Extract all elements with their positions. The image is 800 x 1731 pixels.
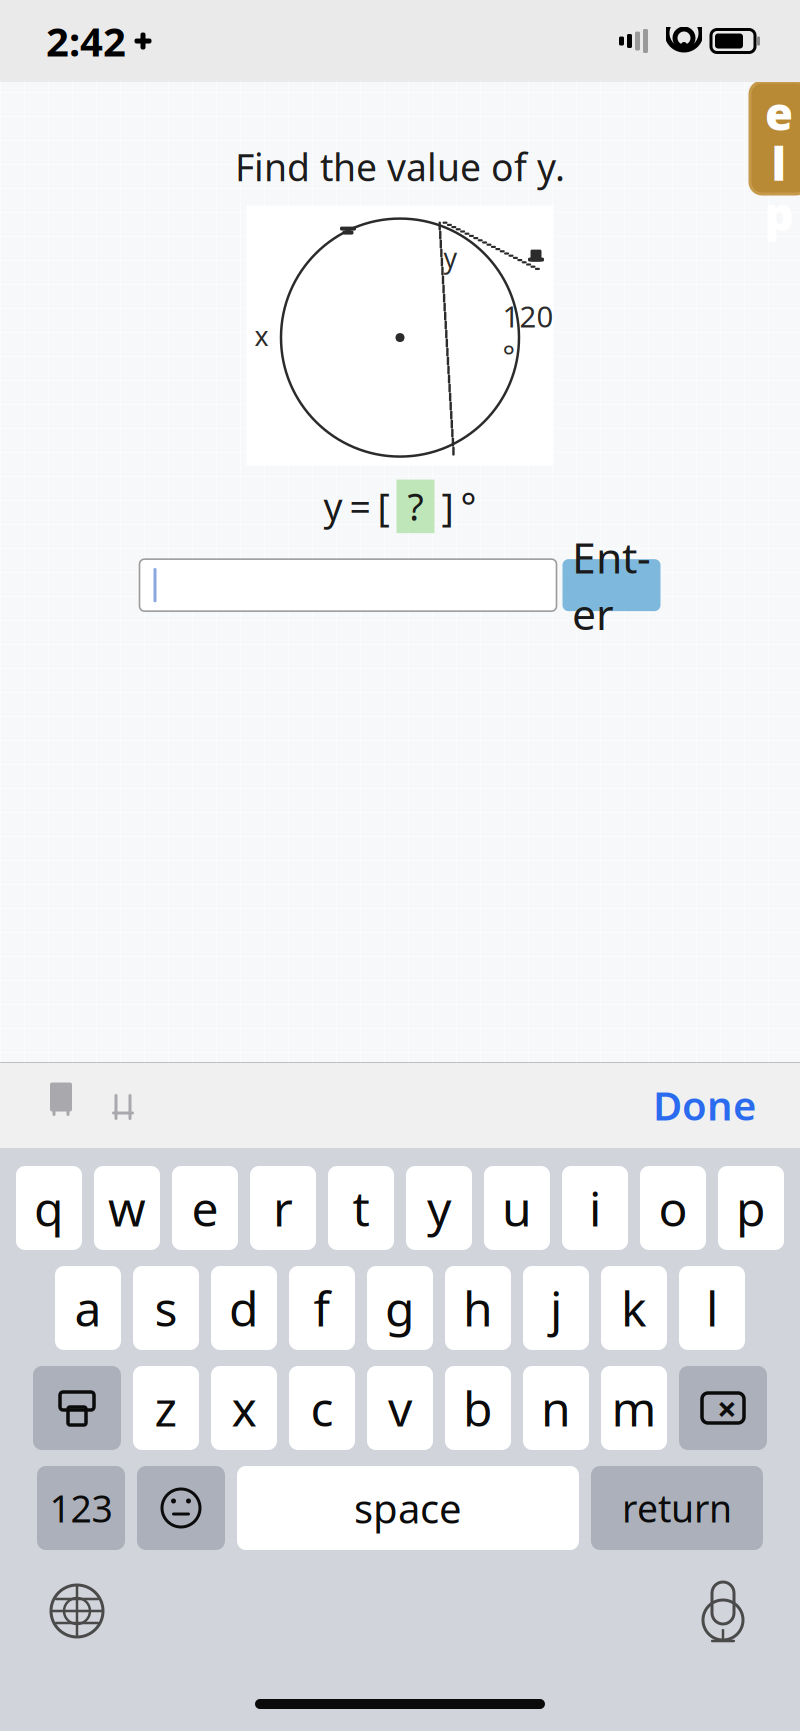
button[interactable]: Change keyboard [42, 1576, 112, 1646]
staticText: Find the value of y. [235, 142, 565, 192]
staticText: ? [407, 482, 423, 531]
staticText: r [273, 1176, 293, 1240]
staticText: j [550, 1276, 562, 1340]
button[interactable]: Emoji [137, 1466, 225, 1550]
button[interactable]: Done [639, 1068, 770, 1141]
button[interactable]: k [601, 1266, 667, 1350]
staticText: x [231, 1376, 256, 1440]
staticText: d [229, 1276, 259, 1340]
button[interactable]: d [211, 1266, 277, 1350]
button[interactable]: return [591, 1466, 763, 1550]
staticText: ] [441, 482, 453, 531]
staticText: ° [460, 482, 476, 531]
staticText: t [352, 1176, 369, 1240]
staticText: 120° [502, 297, 553, 374]
button[interactable]: Answer input field [139, 559, 556, 611]
staticText: 123 [49, 1483, 112, 1533]
button[interactable]: q [16, 1166, 82, 1250]
button[interactable]: Help [750, 82, 800, 194]
button[interactable]: m [601, 1366, 667, 1450]
staticText: e [765, 83, 793, 143]
staticText: space [354, 1481, 462, 1534]
button[interactable]: o [640, 1166, 706, 1250]
button[interactable]: r [250, 1166, 316, 1250]
staticText: y [443, 240, 457, 275]
button[interactable]: Delete [679, 1366, 767, 1450]
staticText: × [717, 1385, 737, 1431]
staticText: H [761, 33, 796, 93]
staticText: f [313, 1276, 330, 1340]
button[interactable]: t [328, 1166, 394, 1250]
button[interactable]: p [718, 1166, 784, 1250]
staticText: v [388, 1376, 412, 1440]
staticText: Done [653, 1078, 756, 1131]
button[interactable]: h [445, 1266, 511, 1350]
button[interactable]: c [289, 1366, 355, 1450]
button[interactable]: Enter [562, 559, 660, 611]
button[interactable]: s [133, 1266, 199, 1350]
button[interactable]: j [523, 1266, 589, 1350]
button[interactable]: i [562, 1166, 628, 1250]
button[interactable]: b [445, 1366, 511, 1450]
staticText: n [541, 1376, 571, 1440]
button[interactable]: n [523, 1366, 589, 1450]
button[interactable]: Next field [92, 1074, 154, 1136]
staticText: u [502, 1176, 532, 1240]
staticText: k [621, 1276, 647, 1340]
button[interactable]: x [211, 1366, 277, 1450]
staticText: o [658, 1176, 687, 1240]
staticText: s [154, 1276, 177, 1340]
button[interactable]: l [679, 1266, 745, 1350]
button[interactable]: e [172, 1166, 238, 1250]
button[interactable]: space [237, 1466, 579, 1550]
button[interactable]: w [94, 1166, 160, 1250]
button[interactable]: y [406, 1166, 472, 1250]
staticText: l [706, 1276, 718, 1340]
button[interactable]: z [133, 1366, 199, 1450]
button[interactable]: 123 [37, 1466, 125, 1550]
staticText: l [771, 133, 786, 193]
button[interactable]: u [484, 1166, 550, 1250]
staticText: 2:42 [46, 14, 126, 67]
button[interactable]: Dictate [688, 1574, 758, 1648]
button[interactable]: a [55, 1266, 121, 1350]
staticText: m [611, 1376, 656, 1440]
staticText: h [463, 1276, 493, 1340]
button[interactable]: Shift [33, 1366, 121, 1450]
staticText: Enter [572, 528, 651, 642]
staticText: i [589, 1176, 601, 1240]
staticText: [ [377, 482, 389, 531]
staticText: z [154, 1376, 177, 1440]
button[interactable]: g [367, 1266, 433, 1350]
staticText: w [108, 1176, 146, 1240]
staticText: q [34, 1176, 64, 1240]
staticText: c [310, 1376, 333, 1440]
button[interactable]: f [289, 1266, 355, 1350]
staticText: e [191, 1176, 218, 1240]
staticText: = [349, 482, 370, 531]
button[interactable]: v [367, 1366, 433, 1450]
staticText: g [385, 1276, 415, 1340]
staticText: y [427, 1176, 451, 1240]
staticText: return [622, 1483, 732, 1533]
staticText: b [463, 1376, 493, 1440]
staticText: y [323, 482, 342, 531]
staticText: a [74, 1276, 101, 1340]
staticText: p [736, 1176, 766, 1240]
staticText: p [764, 183, 793, 243]
staticText: x [254, 318, 268, 353]
button[interactable]: Previous field [30, 1074, 92, 1136]
